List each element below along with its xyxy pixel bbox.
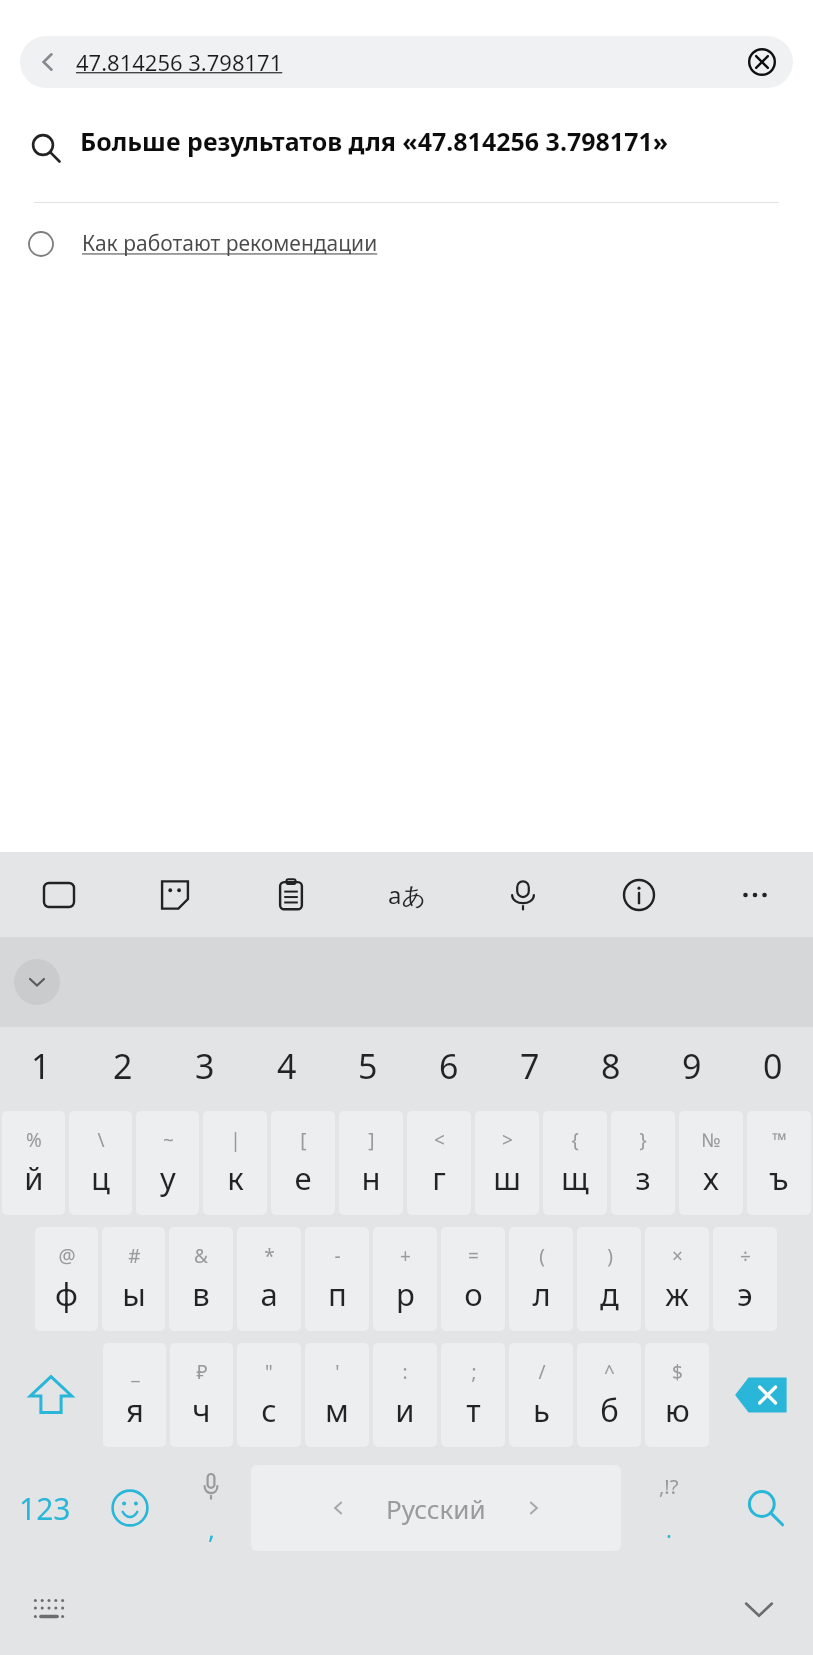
button[interactable]: +	[373, 1227, 437, 1331]
staticText: 9	[682, 1043, 702, 1089]
button[interactable]: Больше результатов для «47.814256 3.7981…	[0, 120, 813, 180]
staticText: @	[58, 1243, 76, 1269]
button[interactable]: GIF	[0, 852, 117, 937]
staticText: к	[227, 1157, 244, 1199]
button[interactable]: '	[305, 1343, 369, 1447]
staticText: =	[468, 1243, 479, 1269]
button[interactable]: "	[237, 1343, 301, 1447]
button[interactable]: \	[69, 1111, 132, 1215]
staticText: '	[335, 1359, 340, 1385]
button[interactable]: _	[103, 1343, 166, 1447]
button[interactable]: Shift	[0, 1337, 101, 1453]
button[interactable]: ™	[747, 1111, 811, 1215]
button[interactable]: >	[475, 1111, 539, 1215]
button[interactable]: ₽	[170, 1343, 233, 1447]
staticText: #	[128, 1243, 141, 1269]
staticText: е	[294, 1157, 312, 1199]
button[interactable]: Expand suggestions	[14, 959, 60, 1005]
staticText: с	[261, 1389, 277, 1431]
button[interactable]: Hide keyboard	[729, 1579, 789, 1639]
button[interactable]: 6	[408, 1027, 489, 1105]
button[interactable]: :	[373, 1343, 437, 1447]
button[interactable]: [	[271, 1111, 335, 1215]
button[interactable]: More	[697, 852, 813, 937]
staticText: в	[192, 1273, 210, 1315]
button[interactable]: %	[2, 1111, 65, 1215]
staticText: *	[264, 1243, 275, 1269]
button[interactable]: 9	[651, 1027, 732, 1105]
button[interactable]: ÷	[713, 1227, 777, 1331]
button[interactable]: Search	[717, 1453, 813, 1563]
button[interactable]: Keyboard layout	[22, 1582, 76, 1636]
button[interactable]: *	[237, 1227, 301, 1331]
button[interactable]: 2	[82, 1027, 164, 1105]
button[interactable]: 123	[0, 1453, 89, 1563]
staticText: ф	[55, 1273, 78, 1315]
button[interactable]: ×	[645, 1227, 709, 1331]
button[interactable]: 4	[246, 1027, 327, 1105]
staticText: ,!?	[659, 1473, 679, 1500]
button[interactable]: 8	[570, 1027, 651, 1105]
button[interactable]: ,!?	[621, 1453, 717, 1563]
button[interactable]: |	[203, 1111, 267, 1215]
button[interactable]: #	[102, 1227, 165, 1331]
button[interactable]: <	[407, 1111, 471, 1215]
button[interactable]: }	[611, 1111, 675, 1215]
button[interactable]: Translate	[349, 852, 465, 937]
button[interactable]: Voice input	[170, 1453, 251, 1563]
button[interactable]: 1	[0, 1027, 82, 1105]
button[interactable]: Voice	[465, 852, 581, 937]
button[interactable]: Back	[20, 36, 76, 88]
staticText: aあ	[388, 878, 427, 911]
staticText: }	[639, 1127, 647, 1153]
staticText: ,	[208, 1511, 215, 1546]
button[interactable]: Back	[20, 36, 793, 88]
button[interactable]: &	[169, 1227, 233, 1331]
button[interactable]: ^	[577, 1343, 641, 1447]
button[interactable]: ~	[136, 1111, 199, 1215]
button[interactable]: 7	[489, 1027, 570, 1105]
staticText: т	[466, 1389, 481, 1431]
staticText: ^	[604, 1359, 615, 1385]
staticText: ™	[772, 1127, 787, 1153]
staticText: ь	[533, 1389, 550, 1431]
staticText: №	[701, 1127, 721, 1153]
staticText: ц	[91, 1157, 110, 1199]
button[interactable]: -	[305, 1227, 369, 1331]
button[interactable]: Clear	[731, 36, 793, 88]
button[interactable]: $	[645, 1343, 709, 1447]
button[interactable]: Русский	[251, 1465, 621, 1551]
button[interactable]: 0	[732, 1027, 813, 1105]
staticText: а	[260, 1273, 278, 1315]
button[interactable]: @	[35, 1227, 98, 1331]
button[interactable]: ;	[441, 1343, 505, 1447]
button[interactable]: Как работают рекомендации	[0, 229, 813, 258]
button[interactable]: /	[509, 1343, 573, 1447]
staticText: ш	[493, 1157, 521, 1199]
button[interactable]: Clipboard	[233, 852, 349, 937]
button[interactable]: Info	[581, 852, 697, 937]
button[interactable]: Backspace	[711, 1337, 813, 1453]
button[interactable]: 5	[327, 1027, 408, 1105]
button[interactable]: №	[679, 1111, 743, 1215]
staticText: х	[703, 1157, 719, 1199]
staticText: 0	[763, 1043, 783, 1089]
button[interactable]: Emoji	[89, 1453, 170, 1563]
staticText: &	[194, 1243, 208, 1269]
button[interactable]: )	[577, 1227, 641, 1331]
staticText: 6	[439, 1043, 459, 1089]
staticText: г	[432, 1157, 446, 1199]
staticText: <	[434, 1127, 445, 1153]
button[interactable]: ]	[339, 1111, 403, 1215]
staticText: й	[24, 1157, 44, 1199]
staticText: 8	[601, 1043, 621, 1089]
staticText: Русский	[386, 1491, 486, 1526]
button[interactable]: {	[543, 1111, 607, 1215]
button[interactable]: =	[441, 1227, 505, 1331]
staticText: щ	[561, 1157, 589, 1199]
staticText: ю	[665, 1389, 690, 1431]
button[interactable]: Sticker	[117, 852, 233, 937]
staticText: 1	[31, 1043, 51, 1089]
button[interactable]: (	[509, 1227, 573, 1331]
button[interactable]: 3	[164, 1027, 246, 1105]
